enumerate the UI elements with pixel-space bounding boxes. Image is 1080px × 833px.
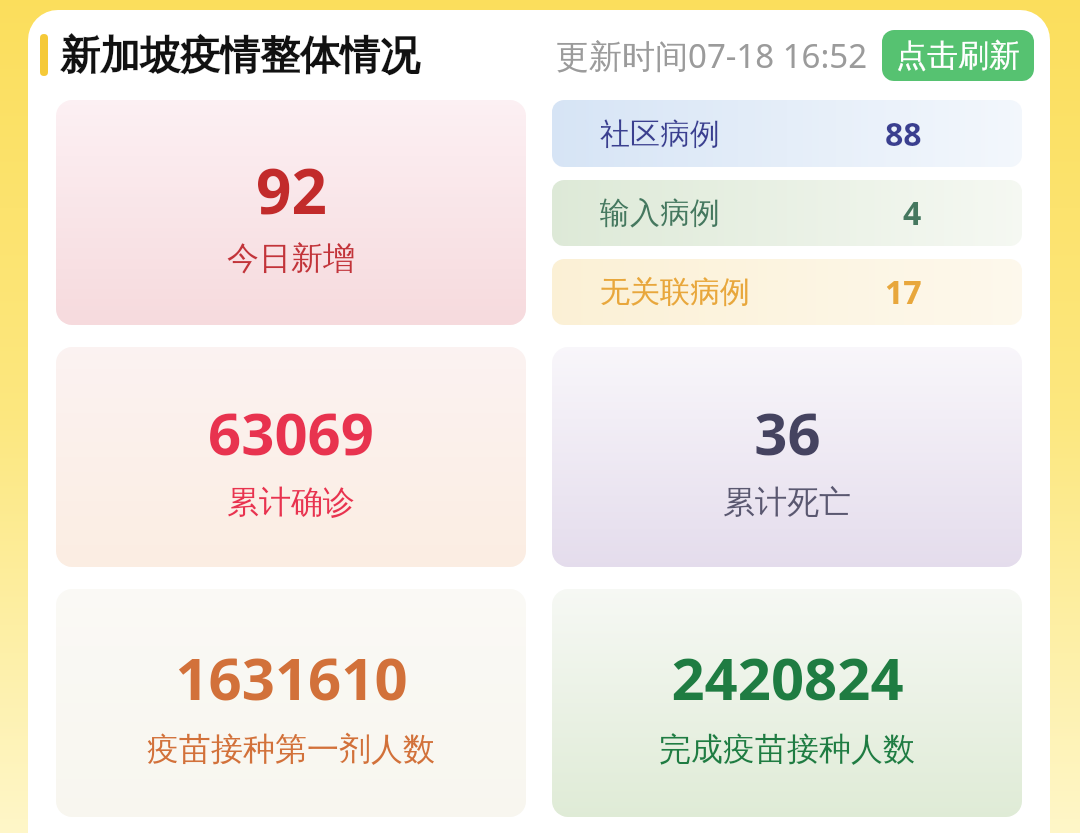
staticText: 社区病例 <box>600 115 720 153</box>
staticText: 63069 <box>208 393 374 472</box>
staticText: 更新时间07-18 16:52 <box>556 33 868 78</box>
button[interactable]: 2420824 <box>552 589 1022 817</box>
staticText: 累计确诊 <box>227 482 355 522</box>
staticText: 无关联病例 <box>600 273 750 311</box>
staticText: 1631610 <box>175 638 408 717</box>
staticText: 36 <box>754 393 821 472</box>
button[interactable]: 36 <box>552 347 1022 567</box>
button[interactable]: 无关联病例 <box>552 259 1022 325</box>
staticText: 新加坡疫情整体情况 <box>60 30 420 80</box>
staticText: 完成疫苗接种人数 <box>659 729 915 769</box>
staticText: 17 <box>885 270 922 314</box>
staticText: 累计死亡 <box>723 482 851 522</box>
staticText: 2420824 <box>671 638 904 717</box>
staticText: 点击刷新 <box>896 36 1020 75</box>
button[interactable]: 1631610 <box>56 589 526 817</box>
staticText: 4 <box>903 191 922 235</box>
staticText: 92 <box>256 148 327 232</box>
staticText: 今日新增 <box>227 238 355 278</box>
button[interactable]: 92 <box>56 100 526 325</box>
staticText: 输入病例 <box>600 194 720 232</box>
staticText: 疫苗接种第一剂人数 <box>147 729 435 769</box>
button[interactable]: 社区病例 <box>552 100 1022 167</box>
button[interactable]: 点击刷新 <box>882 30 1034 81</box>
button[interactable]: 输入病例 <box>552 180 1022 246</box>
button[interactable]: 63069 <box>56 347 526 567</box>
staticText: 88 <box>885 112 922 156</box>
